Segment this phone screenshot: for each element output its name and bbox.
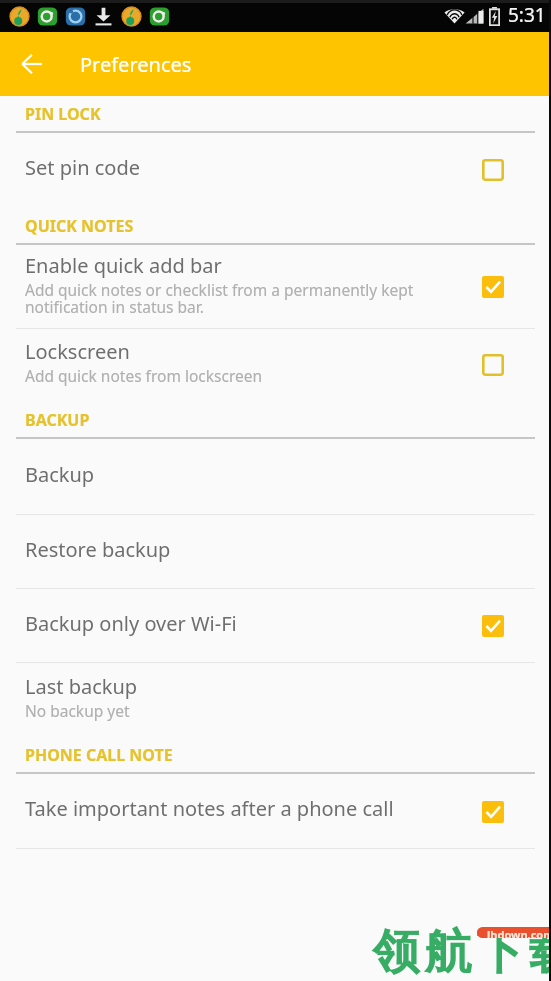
button[interactable]: Backup only over Wi-Fi [0, 589, 551, 663]
button[interactable]: Enable quick add bar [0, 245, 551, 329]
staticText: Backup only over Wi-Fi [25, 610, 237, 637]
button[interactable]: Lockscreen [479, 351, 507, 379]
staticText: PHONE CALL NOTE [25, 744, 173, 766]
staticText: 领航下载 [370, 923, 551, 981]
button[interactable]: Navigate up [10, 43, 52, 85]
staticText: Last backup [25, 673, 138, 700]
staticText: Backup [25, 461, 95, 488]
staticText: lhdown.com [487, 927, 551, 938]
staticText: Preferences [80, 51, 192, 78]
staticText: No backup yet [25, 700, 130, 721]
staticText: Take important notes after a phone call [25, 795, 394, 822]
button[interactable]: Backup only over Wi-Fi [479, 612, 507, 640]
button[interactable]: Take important notes after a phone call [479, 798, 507, 826]
staticText: QUICK NOTES [25, 215, 134, 237]
button[interactable]: Restore backup [0, 515, 551, 589]
button[interactable]: Backup [0, 439, 551, 515]
staticText: Set pin code [25, 154, 140, 181]
staticText: BACKUP [25, 409, 90, 431]
staticText: Restore backup [25, 536, 171, 563]
button[interactable]: Last backup [0, 663, 551, 736]
button[interactable]: Lockscreen [0, 329, 551, 401]
staticText: Add quick notes or checklist from a perm… [25, 279, 414, 317]
staticText: PIN LOCK [25, 103, 101, 125]
button[interactable]: Set pin code [0, 133, 551, 207]
button[interactable]: Enable quick add bar [479, 273, 507, 301]
button[interactable]: Set pin code [479, 156, 507, 184]
staticText: Enable quick add bar [25, 252, 222, 279]
staticText: Add quick notes from lockscreen [25, 365, 263, 386]
staticText: Lockscreen [25, 338, 130, 365]
button[interactable]: Take important notes after a phone call [0, 774, 551, 849]
staticText: 5:31 [508, 2, 546, 28]
